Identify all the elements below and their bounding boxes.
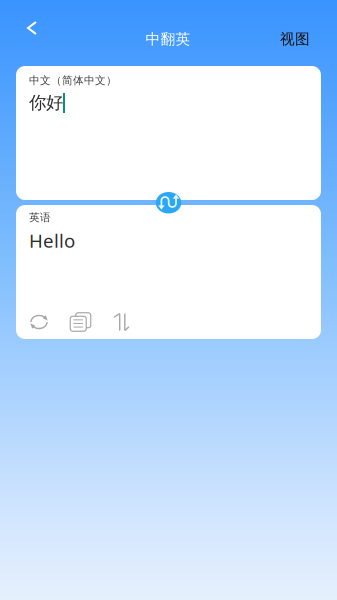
staticText: 你好 bbox=[29, 92, 63, 113]
button[interactable]: 视图 bbox=[268, 17, 322, 61]
staticText: 视图 bbox=[280, 30, 310, 48]
staticText: 中翻英 bbox=[145, 30, 190, 48]
button[interactable]: Reorder bbox=[109, 310, 133, 334]
button[interactable]: Retranslate bbox=[27, 310, 51, 334]
button[interactable]: Back bbox=[10, 6, 54, 50]
staticText: Hello bbox=[29, 228, 75, 253]
button[interactable]: Swap languages bbox=[156, 190, 186, 216]
staticText: 英语 bbox=[29, 211, 51, 224]
button[interactable]: Copy bbox=[69, 310, 93, 334]
staticText: 中文（简体中文） bbox=[29, 74, 117, 87]
